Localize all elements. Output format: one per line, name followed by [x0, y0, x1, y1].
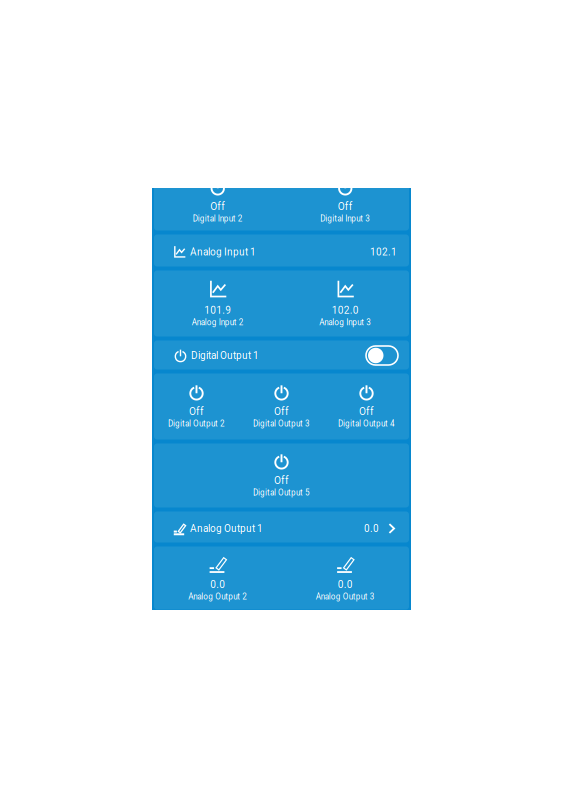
button[interactable]: Analog Input 1	[154, 234, 409, 266]
button[interactable]: Off	[154, 179, 281, 223]
staticText: 102.1	[370, 246, 397, 258]
staticText: 0.0	[338, 578, 353, 590]
button[interactable]: 0.0	[281, 554, 409, 601]
staticText: 0.0	[364, 523, 379, 534]
staticText: Analog Input 1	[190, 246, 256, 258]
staticText: Digital Output 5	[253, 488, 310, 497]
staticText: 0.0	[210, 578, 225, 590]
staticText: Digital Output 1	[191, 350, 259, 361]
staticText: Off	[210, 200, 225, 212]
staticText: Digital Input 2	[193, 214, 243, 223]
button[interactable]: Analog Output 1	[154, 511, 409, 542]
button[interactable]: Off	[324, 384, 409, 428]
staticText: Off	[359, 405, 374, 417]
staticText: Off	[189, 405, 204, 417]
staticText: 101.9	[204, 304, 231, 316]
button[interactable]: 102.0	[281, 280, 409, 327]
staticText: Digital Input 3	[320, 214, 370, 223]
staticText: Analog Output 2	[188, 592, 247, 601]
staticText: Analog Output 1	[190, 523, 263, 534]
button[interactable]: Off	[154, 384, 239, 428]
staticText: Digital Output 3	[253, 419, 310, 428]
staticText: Analog Output 3	[316, 592, 375, 601]
button[interactable]: Off	[281, 179, 409, 223]
button[interactable]: Off	[239, 384, 324, 428]
staticText: Digital Output 4	[338, 419, 395, 428]
button[interactable]: Off	[154, 453, 409, 497]
button[interactable]: 0.0	[154, 554, 281, 601]
staticText: Off	[274, 474, 289, 486]
button[interactable]: Digital Output 1	[154, 340, 409, 369]
staticText: Off	[274, 405, 289, 417]
staticText: Digital Output 2	[168, 419, 225, 428]
staticText: Off	[338, 200, 353, 212]
staticText: Analog Input 3	[319, 318, 371, 327]
button[interactable]: 101.9	[154, 280, 281, 327]
staticText: 102.0	[332, 304, 359, 316]
staticText: Analog Input 2	[192, 318, 244, 327]
